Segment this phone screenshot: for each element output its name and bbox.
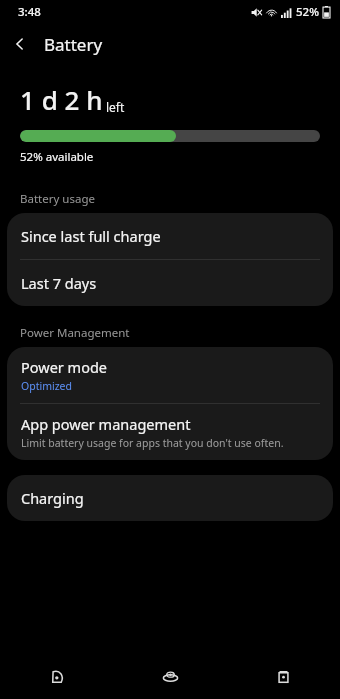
staticText: 3:48 xyxy=(18,4,41,20)
button[interactable]: Home xyxy=(114,653,227,699)
button[interactable]: Charging xyxy=(7,475,333,521)
button[interactable]: Since last full charge xyxy=(7,213,333,259)
button[interactable]: App power management xyxy=(7,404,333,460)
button[interactable]: Last 7 days xyxy=(7,260,333,306)
button[interactable]: Back xyxy=(227,653,340,699)
staticText: Power Management xyxy=(20,325,130,341)
staticText: App power management xyxy=(21,414,191,434)
staticText: Battery xyxy=(44,33,103,56)
staticText: Since last full charge xyxy=(21,226,161,246)
staticText: Optimized xyxy=(21,379,72,393)
staticText: left xyxy=(106,99,125,115)
staticText: Charging xyxy=(21,488,84,508)
staticText: Power mode xyxy=(21,357,108,377)
staticText: Battery usage xyxy=(20,191,95,207)
staticText: 1 d 2 h xyxy=(20,82,103,117)
button[interactable]: Power mode xyxy=(7,347,333,403)
button[interactable]: Back xyxy=(0,24,40,64)
staticText: 52% available xyxy=(20,149,94,165)
staticText: Limit battery usage for apps that you do… xyxy=(21,436,284,450)
button[interactable]: Recent apps xyxy=(0,653,114,699)
staticText: 52% xyxy=(296,4,319,20)
staticText: Last 7 days xyxy=(21,273,97,293)
